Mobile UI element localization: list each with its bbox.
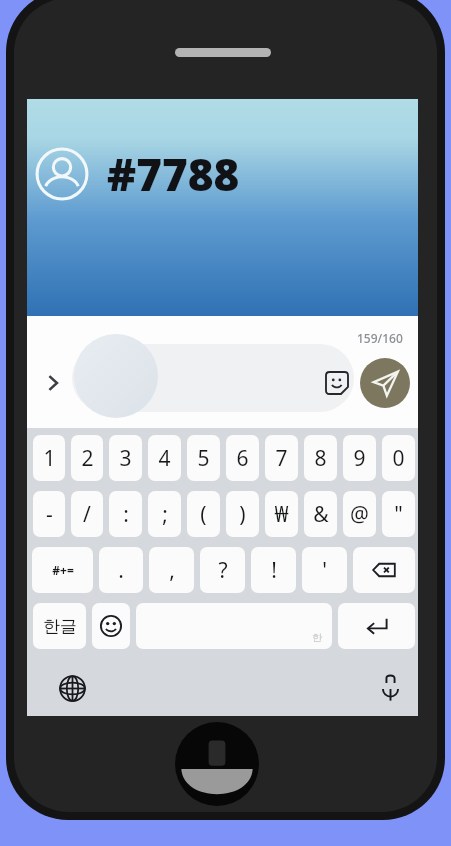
button[interactable]: . [99, 547, 143, 593]
button[interactable]: Backspace [353, 547, 415, 593]
button[interactable]: ₩ [265, 491, 298, 537]
button[interactable]: #+= [32, 547, 93, 593]
button[interactable]: Home [175, 722, 259, 806]
button[interactable]: & [304, 491, 337, 537]
staticText: . [118, 556, 124, 585]
button[interactable]: - [33, 491, 65, 537]
staticText: 3 [119, 444, 132, 473]
staticText: 5 [197, 444, 210, 473]
button[interactable]: 5 [187, 435, 220, 481]
staticText: 0 [392, 444, 405, 473]
staticText: 7 [275, 444, 288, 473]
staticText: ! [271, 556, 277, 585]
button[interactable] [72, 344, 354, 412]
button[interactable]: 4 [148, 435, 181, 481]
staticText: @ [350, 500, 369, 529]
button[interactable]: Change language [53, 669, 91, 707]
staticText: : [123, 500, 129, 529]
button[interactable]: ? [200, 547, 245, 593]
button[interactable]: 6 [226, 435, 259, 481]
staticText: " [394, 500, 403, 529]
staticText: 1 [43, 444, 56, 473]
staticText: ? [218, 556, 228, 585]
staticText: 9 [353, 444, 366, 473]
staticText: ₩ [274, 500, 289, 529]
button[interactable]: @ [343, 491, 376, 537]
staticText: - [46, 500, 53, 529]
button[interactable]: 3 [109, 435, 142, 481]
staticText: 8 [314, 444, 327, 473]
staticText: #+= [52, 562, 74, 578]
button[interactable]: 7 [265, 435, 298, 481]
button[interactable]: " [382, 491, 415, 537]
button[interactable]: 8 [304, 435, 337, 481]
button[interactable]: Stickers [320, 366, 354, 400]
button[interactable]: , [149, 547, 194, 593]
button[interactable]: ! [251, 547, 296, 593]
staticText: 2 [81, 444, 94, 473]
staticText: ( [200, 500, 207, 529]
button[interactable]: Send [360, 358, 410, 408]
staticText: 159/160 [357, 330, 403, 346]
button[interactable]: ' [302, 547, 347, 593]
button[interactable]: 한글 [33, 603, 86, 649]
button[interactable]: / [71, 491, 103, 537]
button[interactable]: Profile [31, 143, 93, 205]
button[interactable]: Emoji [92, 603, 130, 649]
staticText: , [169, 556, 175, 585]
button[interactable]: ) [226, 491, 259, 537]
button[interactable]: Expand actions [38, 368, 68, 398]
button[interactable]: 2 [71, 435, 103, 481]
button[interactable]: 9 [343, 435, 376, 481]
button[interactable]: ; [148, 491, 181, 537]
staticText: & [313, 500, 329, 529]
staticText: 한 [312, 631, 322, 644]
button[interactable]: 0 [382, 435, 415, 481]
button[interactable]: ( [187, 491, 220, 537]
button[interactable]: 1 [33, 435, 65, 481]
button[interactable]: : [109, 491, 142, 537]
button[interactable]: Space [136, 603, 332, 649]
staticText: ; [162, 500, 168, 529]
staticText: 한글 [43, 616, 77, 637]
staticText: #7788 [107, 144, 240, 204]
staticText: 4 [158, 444, 171, 473]
button[interactable]: Voice input [371, 669, 409, 707]
button[interactable]: Enter [338, 603, 415, 649]
staticText: ' [322, 556, 327, 585]
staticText: / [83, 500, 91, 529]
staticText: 6 [236, 444, 249, 473]
staticText: ) [239, 500, 246, 529]
